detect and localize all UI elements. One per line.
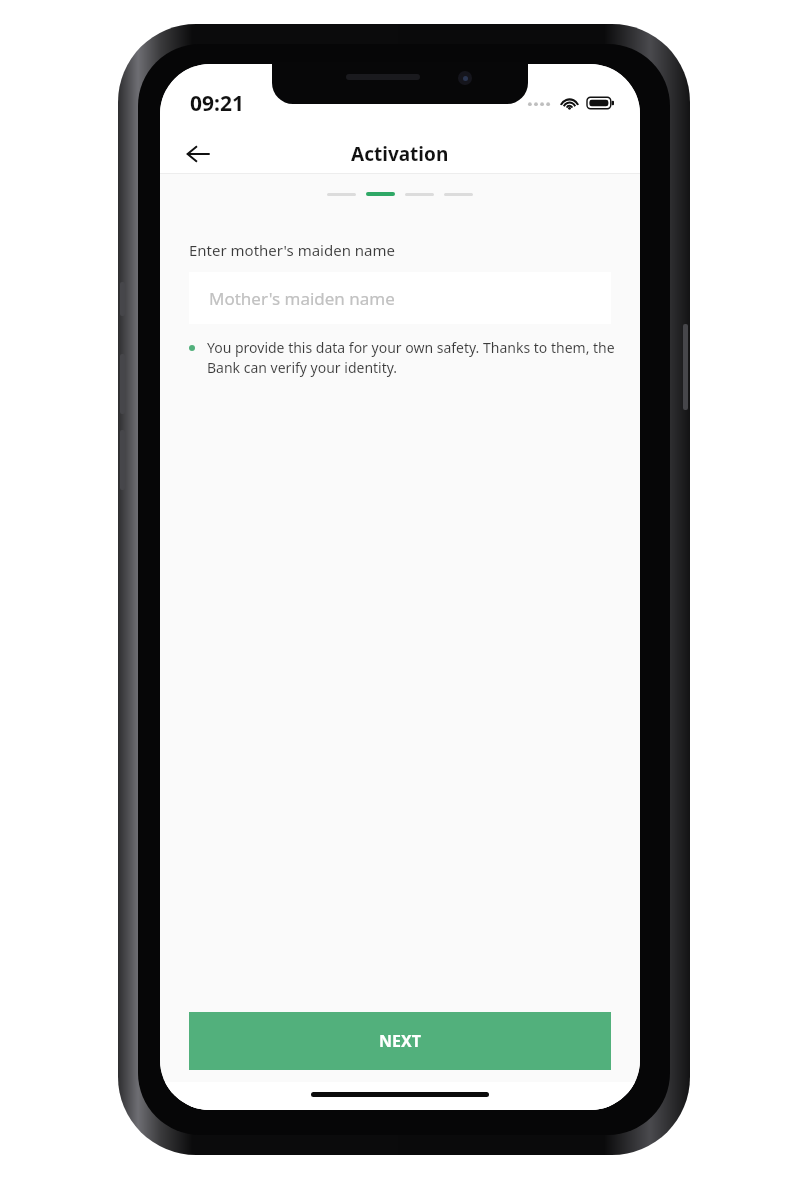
button[interactable]: Mother's maiden name	[189, 272, 611, 324]
staticText: Mother's maiden name	[209, 287, 395, 310]
staticText: Enter mother's maiden name	[189, 240, 395, 260]
staticText: You provide this data for your own safet…	[207, 338, 616, 377]
staticText: NEXT	[379, 1030, 421, 1052]
button[interactable]: NEXT	[189, 1012, 611, 1070]
staticText: 09:21	[190, 89, 244, 118]
button[interactable]: Back	[174, 134, 222, 173]
staticText: Activation	[351, 141, 449, 167]
